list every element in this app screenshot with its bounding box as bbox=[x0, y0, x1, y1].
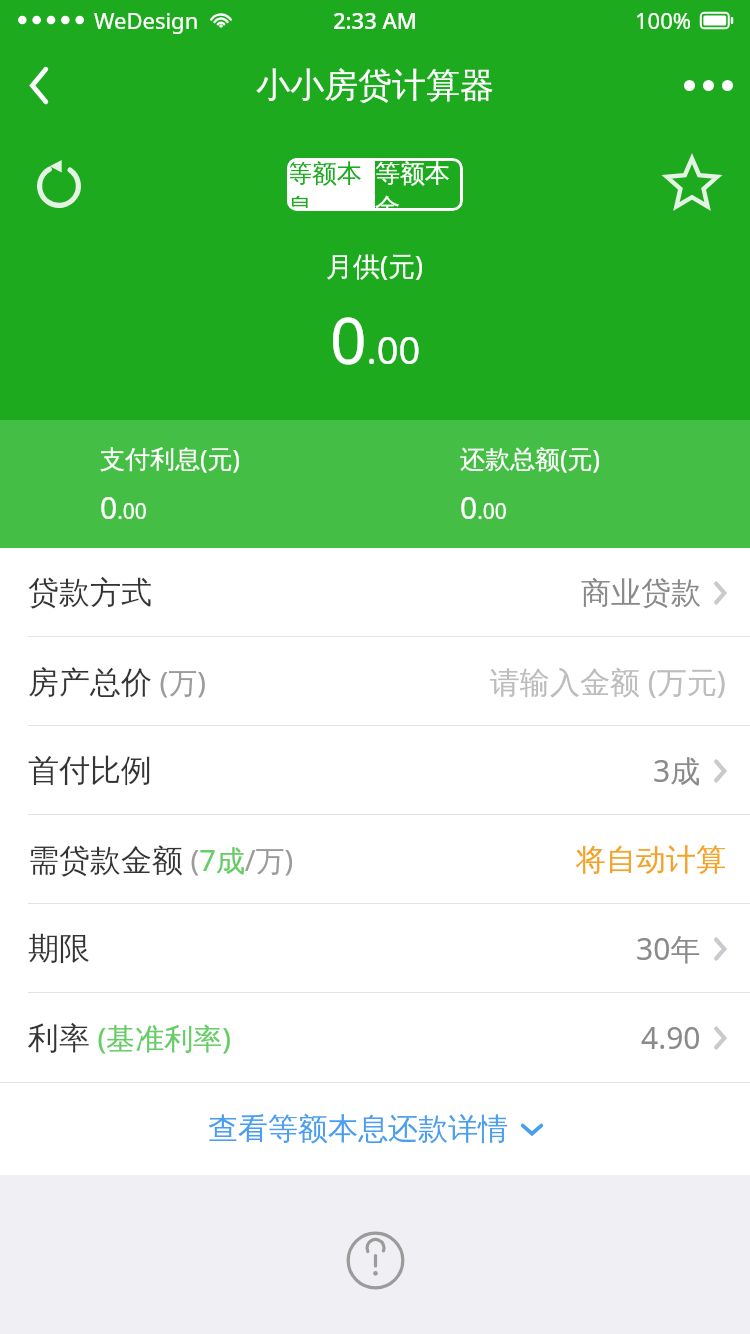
staticText: 房产总价 (万) bbox=[28, 662, 206, 702]
staticText: 期限 bbox=[28, 929, 90, 968]
staticText: 首付比例 bbox=[28, 751, 152, 790]
staticText: 贷款方式 bbox=[28, 573, 152, 612]
button[interactable]: 利率 (基准利率) bbox=[0, 993, 750, 1082]
staticText: 0.00 bbox=[330, 296, 421, 383]
button[interactable]: 房产总价 (万) bbox=[0, 637, 750, 726]
staticText: 还款总额(元) bbox=[460, 441, 601, 475]
staticText: 将自动计算 bbox=[576, 841, 726, 879]
staticText: 需贷款金额 (7成/万) bbox=[28, 840, 294, 880]
button[interactable]: Reset bbox=[20, 145, 98, 223]
staticText: 支付利息(元) bbox=[100, 441, 241, 475]
staticText: 月供(元) bbox=[326, 247, 424, 284]
staticText: 等额本息 bbox=[287, 158, 375, 211]
staticText: 小小房贷计算器 bbox=[256, 64, 494, 107]
button[interactable]: More options bbox=[666, 45, 750, 125]
button[interactable]: 等额本金 bbox=[375, 158, 463, 211]
staticText: 商业贷款 bbox=[581, 574, 701, 612]
button[interactable]: Back bbox=[0, 45, 78, 125]
staticText: 查看等额本息还款详情 bbox=[208, 1110, 508, 1148]
staticText: 4.90 bbox=[641, 1017, 701, 1058]
staticText: WeDesign bbox=[94, 5, 199, 35]
staticText: 0.00 bbox=[100, 487, 147, 528]
button[interactable]: 等额本息 bbox=[287, 158, 375, 211]
button[interactable]: 期限 bbox=[0, 904, 750, 993]
button[interactable]: 需贷款金额 (7成/万) bbox=[0, 815, 750, 904]
button[interactable]: Help bbox=[339, 1224, 411, 1296]
staticText: 0.00 bbox=[460, 487, 507, 528]
staticText: 等额本金 bbox=[375, 158, 463, 211]
staticText: 30年 bbox=[636, 928, 701, 969]
button[interactable]: Favorite bbox=[652, 143, 732, 223]
staticText: 利率 (基准利率) bbox=[28, 1018, 231, 1058]
button[interactable]: 贷款方式 bbox=[0, 548, 750, 637]
staticText: 2:33 AM bbox=[333, 5, 418, 35]
button[interactable]: 首付比例 bbox=[0, 726, 750, 815]
button[interactable]: 查看等额本息还款详情 bbox=[0, 1083, 750, 1175]
staticText: 3成 bbox=[653, 750, 701, 791]
staticText: 100% bbox=[635, 5, 692, 35]
staticText: 请输入金额 (万元) bbox=[490, 661, 726, 702]
